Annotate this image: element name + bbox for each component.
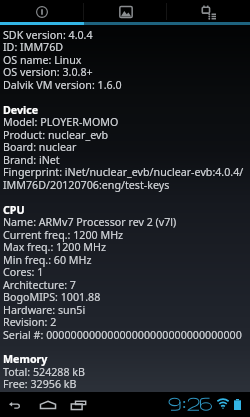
staticText: SDK version: 4.0.4	[3, 28, 93, 43]
button[interactable]: Hardware	[167, 0, 250, 25]
staticText: Current freq.: 1200 MHz	[3, 228, 124, 243]
staticText: Free: 32956 kB	[3, 377, 77, 392]
staticText: OS name: Linux	[3, 53, 82, 68]
staticText: Max freq.: 1200 MHz	[3, 240, 106, 255]
staticText: Device	[3, 103, 39, 118]
staticText: Memory	[3, 352, 48, 367]
staticText: CPU	[3, 203, 25, 218]
staticText: Min freq.: 60 MHz	[3, 253, 92, 268]
button[interactable]: Home	[32, 392, 64, 417]
button[interactable]: Info	[0, 0, 84, 25]
staticText: Total: 524288 kB	[3, 365, 86, 380]
staticText: Cores: 1	[3, 265, 44, 280]
staticText: Brand: iNet	[3, 153, 60, 168]
staticText: Revision: 2	[3, 315, 57, 330]
staticText: Architecture: 7	[3, 278, 76, 293]
staticText: BogoMIPS: 1001.88	[3, 290, 101, 305]
staticText: OS version: 3.0.8+	[3, 65, 93, 80]
staticText: Fingerprint: iNet/nuclear_evb/nuclear-ev…	[3, 165, 244, 180]
button[interactable]: Back	[1, 392, 29, 417]
staticText: ID: IMM76D	[3, 40, 64, 55]
staticText: Model: PLOYER-MOMO	[3, 115, 119, 130]
staticText: Board: nuclear	[3, 140, 77, 155]
button[interactable]: Images	[84, 0, 167, 25]
button[interactable]: Recent apps	[63, 392, 94, 417]
staticText: Serial #: 000000000000000000000000000000…	[3, 328, 242, 343]
staticText: Dalvik VM version: 1.6.0	[3, 78, 122, 93]
staticText: Hardware: sun5i	[3, 303, 86, 318]
staticText: IMM76D/20120706:eng/test-keys	[3, 178, 170, 193]
staticText: Product: nuclear_evb	[3, 128, 109, 143]
staticText: Name: ARMv7 Processor rev 2 (v7l)	[3, 215, 177, 230]
